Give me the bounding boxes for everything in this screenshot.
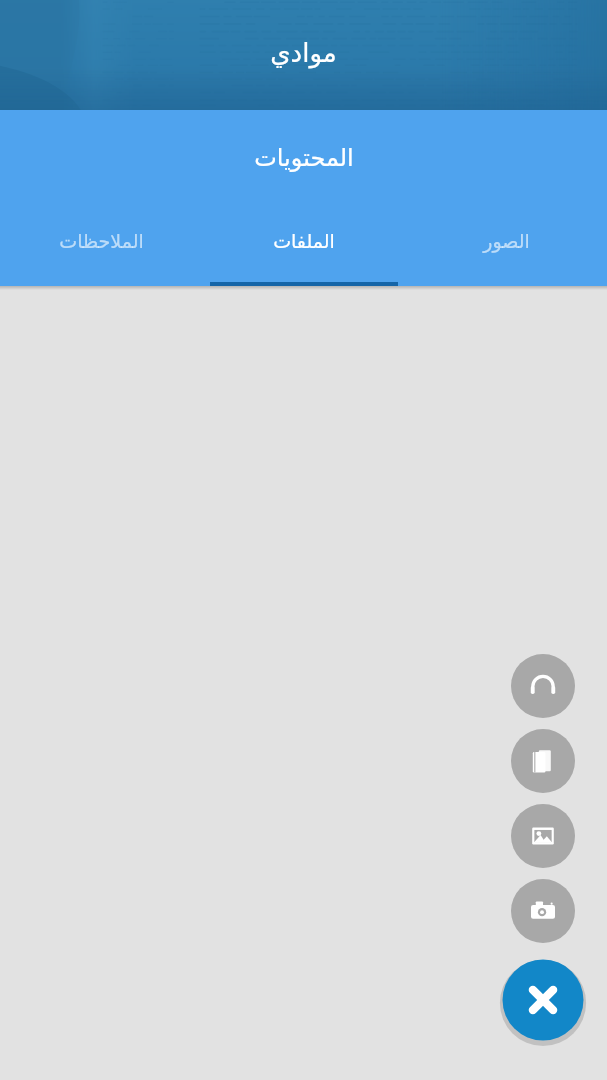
button[interactable]: Close menu: [499, 956, 587, 1044]
button[interactable]: Audio: [511, 654, 575, 718]
button[interactable]: Camera: [511, 879, 575, 943]
staticText: الملفات: [273, 230, 335, 252]
button[interactable]: Books: [511, 729, 575, 793]
button[interactable]: الملفات: [203, 214, 405, 286]
button[interactable]: الصور: [405, 214, 607, 286]
staticText: المحتويات: [254, 144, 354, 172]
staticText: الصور: [483, 230, 530, 252]
button[interactable]: الملاحظات: [0, 214, 203, 286]
button[interactable]: Gallery: [511, 804, 575, 868]
staticText: موادي: [270, 38, 337, 68]
staticText: الملاحظات: [59, 230, 144, 252]
